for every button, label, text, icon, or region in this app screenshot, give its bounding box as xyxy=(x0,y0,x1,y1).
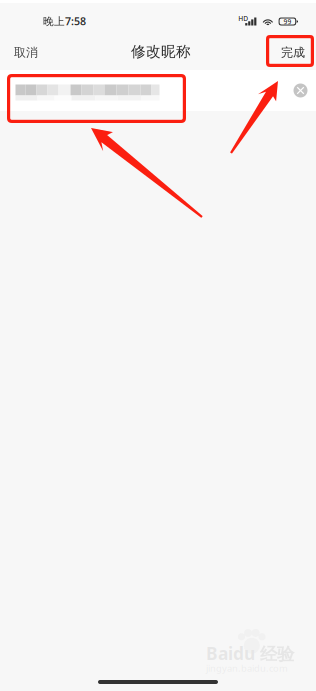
button[interactable]: 取消 xyxy=(0,35,54,70)
staticText: 修改昵称 xyxy=(131,42,191,60)
staticText: HD xyxy=(238,14,248,23)
staticText: 晚上7:58 xyxy=(43,14,86,28)
staticText: 完成 xyxy=(281,45,305,60)
button[interactable]: 昵称输入框 xyxy=(0,70,276,111)
button[interactable]: 完成 xyxy=(265,35,316,70)
staticText: 取消 xyxy=(14,45,38,60)
staticText: Baidu 经验 xyxy=(206,642,294,665)
staticText: 99 xyxy=(283,17,291,26)
button[interactable]: 清除 xyxy=(284,74,316,106)
